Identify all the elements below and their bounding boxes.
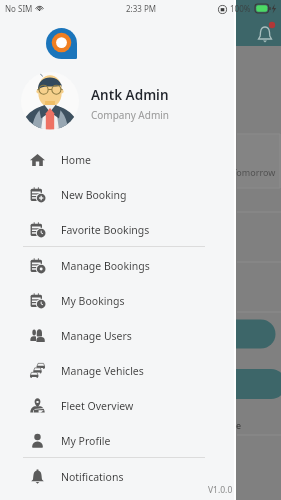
staticText: V1.0.0	[208, 484, 233, 496]
staticText: My Profile	[61, 434, 111, 448]
staticText: 2:33 PM	[126, 3, 157, 14]
button[interactable]: Manage Users	[0, 317, 236, 352]
staticText: New Booking	[61, 188, 127, 202]
button[interactable]: Favorite Bookings	[0, 211, 236, 246]
staticText: Company Admin	[91, 108, 170, 122]
staticText: No SIM	[5, 3, 33, 14]
staticText: Antk Admin	[91, 86, 169, 104]
button[interactable]: Home	[0, 141, 236, 176]
button[interactable]: Manage Vehicles	[0, 352, 236, 387]
button[interactable]: New Booking	[0, 176, 236, 211]
staticText: Favorite Bookings	[61, 223, 150, 237]
staticText: Fleet Overview	[61, 399, 134, 413]
button[interactable]: Manage Bookings	[0, 247, 236, 282]
staticText: Tomorrow	[232, 166, 276, 178]
button[interactable]: My Profile	[0, 422, 236, 457]
button[interactable]: Fleet Overview	[0, 387, 236, 422]
staticText: Manage Users	[61, 329, 132, 343]
button[interactable]: Notifications	[0, 458, 236, 493]
staticText: 100%	[230, 3, 251, 14]
button[interactable]: My Bookings	[0, 282, 236, 317]
staticText: Notifications	[61, 470, 124, 484]
staticText: Home	[61, 153, 91, 167]
staticText: Manage Vehicles	[61, 364, 144, 378]
staticText: Manage Bookings	[61, 259, 150, 273]
button[interactable]: Antk Admin	[0, 69, 236, 129]
staticText: My Bookings	[61, 294, 125, 308]
staticText: e	[236, 419, 242, 431]
